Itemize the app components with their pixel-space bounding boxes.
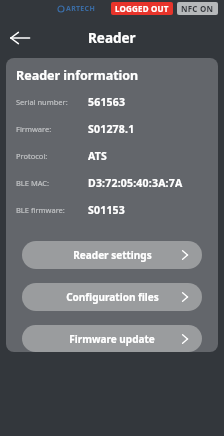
staticText: BLE MAC: bbox=[16, 178, 50, 188]
button[interactable]: Configuration files bbox=[22, 283, 202, 311]
staticText: LOGGED OUT bbox=[115, 3, 169, 14]
button[interactable]: Reader settings bbox=[22, 241, 202, 269]
button[interactable]: Firmware update bbox=[22, 325, 202, 352]
staticText: ATS bbox=[88, 149, 107, 163]
staticText: Reader settings bbox=[73, 248, 152, 262]
staticText: Protocol: bbox=[16, 151, 48, 161]
staticText: Reader information bbox=[16, 67, 139, 84]
button[interactable]: LOGGED OUT bbox=[111, 2, 173, 15]
staticText: S01278.1 bbox=[88, 122, 135, 136]
staticText: Configuration files bbox=[66, 290, 159, 304]
staticText: Reader bbox=[88, 29, 136, 47]
button[interactable]: Back bbox=[5, 25, 35, 51]
staticText: BLE firmware: bbox=[16, 205, 65, 215]
staticText: Firmware: bbox=[16, 124, 52, 134]
staticText: NFC ON bbox=[181, 3, 214, 14]
staticText: 561563 bbox=[88, 95, 126, 109]
button[interactable]: NFC ON bbox=[177, 2, 218, 15]
staticText: Firmware update bbox=[69, 332, 155, 346]
staticText: S01153 bbox=[88, 203, 126, 217]
staticText: Serial number: bbox=[16, 97, 68, 107]
staticText: D3:72:05:40:3A:7A bbox=[88, 176, 183, 190]
staticText: ARTECH bbox=[66, 4, 96, 14]
